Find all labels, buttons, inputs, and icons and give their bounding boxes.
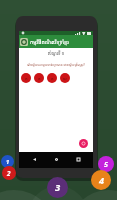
- button[interactable]: គ: [47, 73, 57, 83]
- staticText: 4: [99, 174, 104, 186]
- button[interactable]: 2: [2, 166, 16, 180]
- button[interactable]: Next question: [79, 139, 88, 148]
- staticText: 1: [6, 158, 10, 166]
- staticText: សំណួរទី ១: [19, 51, 93, 57]
- button[interactable]: 3: [47, 177, 68, 198]
- button[interactable]: 5: [98, 156, 114, 172]
- button[interactable]: ឃ: [60, 73, 70, 83]
- button[interactable]: Back: [27, 152, 41, 166]
- button[interactable]: 1: [1, 155, 14, 168]
- button[interactable]: ខ: [34, 73, 44, 83]
- staticText: ខ: [38, 76, 41, 81]
- staticText: ក: [25, 76, 28, 81]
- staticText: 3: [55, 181, 61, 194]
- button[interactable]: Recent apps: [71, 152, 85, 166]
- staticText: 2: [7, 169, 11, 178]
- button[interactable]: កម្មវិធីគណិតវិទ្យាខ្មែរ: [19, 35, 93, 48]
- staticText: កម្មវិធីគណិតវិទ្យាខ្មែរ: [30, 38, 69, 45]
- staticText: ឃ: [63, 76, 67, 81]
- button[interactable]: 4: [91, 170, 111, 190]
- staticText: តើចម្លើយណាមួយខាងក្រោមនេះជាចម្លើយត្រឹមត្រ…: [20, 63, 92, 67]
- staticText: 5: [104, 159, 108, 169]
- button[interactable]: ក: [21, 73, 31, 83]
- staticText: គ: [51, 76, 54, 81]
- button[interactable]: Home: [49, 152, 63, 166]
